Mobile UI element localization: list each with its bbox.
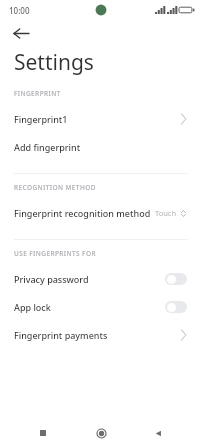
staticText: Fingerprint recognition method (14, 207, 155, 219)
staticText: USE FINGERPRINTS FOR (14, 249, 96, 258)
button[interactable]: Home (86, 418, 116, 448)
button[interactable]: App lock (0, 293, 201, 321)
button[interactable]: Fingerprint1 (0, 105, 201, 133)
staticText: Add fingerprint (14, 141, 187, 153)
button[interactable]: Fingerprint recognition method (0, 199, 201, 227)
staticText: Fingerprint payments (14, 329, 181, 341)
staticText: Settings (14, 48, 94, 77)
staticText: Fingerprint1 (14, 113, 181, 125)
button[interactable]: Back (0, 20, 201, 46)
button[interactable]: App lock (165, 301, 187, 313)
button[interactable]: Add fingerprint (0, 133, 201, 161)
button[interactable]: Fingerprint payments (0, 321, 201, 349)
staticText: 10:00 (9, 5, 30, 16)
button[interactable]: Privacy password (0, 265, 201, 293)
staticText: RECOGNITION METHOD (14, 183, 96, 192)
button[interactable]: Recents (28, 418, 58, 448)
staticText: Touch (155, 208, 177, 218)
staticText: FINGERPRINT (14, 89, 61, 98)
staticText: App lock (14, 301, 165, 313)
button[interactable]: Privacy password (165, 273, 187, 285)
staticText: Privacy password (14, 273, 165, 285)
button[interactable]: Back (143, 418, 173, 448)
